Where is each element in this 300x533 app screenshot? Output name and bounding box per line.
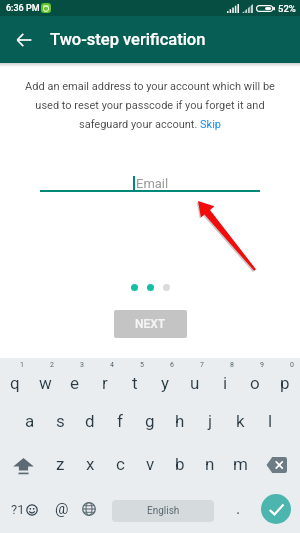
button[interactable]: z [45,442,75,485]
staticText: 2 [50,361,54,369]
staticText: @ [55,500,69,518]
staticText: g [145,411,155,431]
button[interactable]: j [195,400,225,442]
button[interactable]: Enter [256,485,296,533]
staticText: q [10,373,20,393]
staticText: p [280,373,290,393]
button[interactable]: 7 [180,358,210,400]
staticText: j [208,411,213,431]
button[interactable]: Back [4,20,44,60]
staticText: 52% [278,3,296,14]
staticText: x [86,454,95,474]
staticText: m [233,454,248,474]
staticText: b [175,454,185,474]
staticText: n [205,454,215,474]
button[interactable]: 6 [150,358,180,400]
staticText: c [116,454,125,474]
staticText: Two-step verification [50,30,206,49]
staticText: l [268,411,273,431]
staticText: k [236,411,245,431]
button[interactable]: a [15,400,45,442]
button[interactable]: d [75,400,105,442]
staticText: . [236,499,241,518]
staticText: 3 [80,361,84,369]
button[interactable]: f [105,400,135,442]
button[interactable]: g [135,400,165,442]
staticText: 4 [110,361,114,369]
button[interactable]: @ [47,485,77,533]
staticText: e [70,373,80,393]
staticText: 1 [20,361,24,369]
staticText: h [175,411,185,431]
staticText: Email [136,176,169,191]
button[interactable]: m [225,442,255,485]
button[interactable]: s [45,400,75,442]
button[interactable]: b [165,442,195,485]
button[interactable]: l [255,400,285,442]
button[interactable]: 9 [240,358,270,400]
button[interactable]: Symbols and emoji [2,485,46,533]
staticText: ?1 [11,502,25,517]
button[interactable]: Change language [74,485,104,533]
staticText: Add an email address to your account whi… [19,80,281,130]
staticText: 6:36 PM [6,3,40,14]
button[interactable]: v [135,442,165,485]
staticText: English [147,505,180,517]
staticText: 7 [200,361,204,369]
button[interactable]: 5 [120,358,150,400]
staticText: w [39,373,52,393]
staticText: 6 [170,361,174,369]
staticText: u [190,373,200,393]
staticText: 8 [230,361,234,369]
button[interactable]: Shift [0,442,45,485]
staticText: t [132,373,138,393]
button[interactable]: 4 [90,358,120,400]
button[interactable]: h [165,400,195,442]
button[interactable]: Backspace [255,442,300,485]
staticText: z [56,454,65,474]
staticText: s [56,411,65,431]
staticText: f [117,411,123,431]
staticText: r [102,373,108,393]
button[interactable]: x [75,442,105,485]
button[interactable]: 2 [30,358,60,400]
staticText: 0 [290,361,294,369]
staticText: v [146,454,155,474]
button[interactable]: 0 [270,358,300,400]
staticText: 9 [260,361,264,369]
button[interactable]: c [105,442,135,485]
button[interactable]: 1 [0,358,30,400]
staticText: y [161,373,170,393]
button[interactable]: NEXT [114,310,187,338]
button[interactable]: . [221,485,255,533]
staticText: a [25,411,35,431]
staticText: d [85,411,95,431]
button[interactable]: 8 [210,358,240,400]
staticText: 5 [140,361,144,369]
button[interactable]: k [225,400,255,442]
staticText: NEXT [135,317,166,331]
button[interactable]: n [195,442,225,485]
button[interactable]: Email [40,158,260,192]
button[interactable]: 3 [60,358,90,400]
staticText: o [250,373,260,393]
button[interactable]: English [112,500,214,522]
staticText: i [223,373,228,393]
